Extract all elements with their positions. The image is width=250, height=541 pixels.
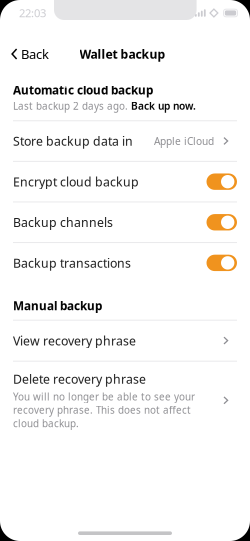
staticText: Backup transactions	[13, 254, 131, 271]
staticText: Apple iCloud	[154, 134, 214, 148]
staticText: Store backup data in	[13, 133, 133, 149]
button[interactable]: Store backup data in	[0, 121, 250, 161]
button[interactable]: Backup transactions	[0, 243, 250, 283]
button[interactable]: Delete recovery phrase	[0, 362, 250, 442]
button[interactable]: Back	[0, 42, 57, 66]
staticText: You will no longer be able to see your r…	[13, 390, 195, 430]
staticText: Encrypt cloud backup	[13, 173, 139, 190]
button[interactable]: Encrypt cloud backup	[0, 162, 250, 201]
staticText: Back	[21, 45, 49, 63]
button[interactable]: View recovery phrase	[0, 321, 250, 361]
staticText: Backup channels	[13, 214, 113, 231]
staticText: 22:03	[19, 5, 46, 21]
staticText: Manual backup	[13, 298, 102, 314]
button[interactable]: Back up now.	[131, 99, 196, 113]
button[interactable]: Backup channels	[0, 202, 250, 242]
staticText: Delete recovery phrase	[13, 371, 146, 387]
staticText: Wallet backup	[79, 46, 165, 62]
staticText: Last backup 2 days ago.	[13, 99, 128, 113]
staticText: Automatic cloud backup	[13, 82, 153, 98]
staticText: View recovery phrase	[13, 332, 136, 349]
staticText: Back up now.	[131, 99, 196, 113]
